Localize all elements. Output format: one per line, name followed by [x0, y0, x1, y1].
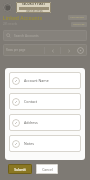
staticText: Rows per page	[6, 48, 26, 52]
staticText: NEW RECORD	[70, 16, 85, 19]
button[interactable]: Account Name	[9, 72, 81, 89]
staticText: Contact	[24, 99, 38, 104]
button[interactable]: Address	[9, 114, 81, 131]
button[interactable]: NEW RECORD	[68, 15, 87, 20]
staticText: Account Name	[24, 78, 49, 83]
button[interactable]: Submit	[8, 164, 32, 174]
button[interactable]: ADVANCED	[71, 22, 87, 27]
button[interactable]: Previous page	[49, 47, 56, 54]
staticText: Cancel	[42, 167, 53, 172]
button[interactable]: Settings	[77, 47, 84, 54]
staticText: Notes	[24, 141, 34, 146]
button[interactable]: Cancel	[36, 164, 58, 174]
staticText: 285 records	[3, 22, 18, 26]
button[interactable]: Notes	[9, 135, 81, 152]
staticText: Search Accounts	[14, 34, 39, 38]
staticText: 480-555-0199	[26, 10, 43, 13]
staticText: ADVANCED	[73, 23, 85, 26]
button[interactable]: Menu	[3, 3, 12, 12]
button[interactable]: Contact	[9, 93, 81, 110]
staticText: Submit	[14, 167, 26, 172]
staticText: Linked Accounts	[3, 15, 43, 22]
staticText: SECURITY FIRST	[22, 2, 46, 6]
button[interactable]: Search Accounts	[3, 30, 87, 41]
staticText: Address	[24, 120, 38, 125]
button[interactable]: Next page	[65, 47, 72, 54]
